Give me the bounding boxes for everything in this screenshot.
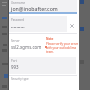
button[interactable]: Clear xyxy=(69,23,75,29)
staticText: Port xyxy=(11,59,17,63)
staticText: with your outlook/ima xyxy=(46,46,77,50)
button[interactable] xyxy=(9,16,67,32)
staticText: Username xyxy=(11,1,26,5)
staticText: team. xyxy=(46,50,54,54)
staticText: Please verify your serve xyxy=(46,42,79,46)
button[interactable]: Scroll xyxy=(79,0,90,90)
staticText: Note xyxy=(46,37,54,41)
staticText: Security type xyxy=(11,77,29,81)
staticText: jon@inobafter.com xyxy=(11,5,58,12)
staticText: 993 xyxy=(11,64,19,70)
staticText: ssl2.xgms.com xyxy=(11,44,42,50)
staticText: Server xyxy=(11,39,20,43)
button[interactable] xyxy=(9,0,77,12)
button[interactable]: Mailbox folders xyxy=(0,0,9,90)
staticText: Password xyxy=(11,18,25,22)
staticText: •••••••••• xyxy=(11,25,25,30)
button[interactable] xyxy=(9,57,76,74)
